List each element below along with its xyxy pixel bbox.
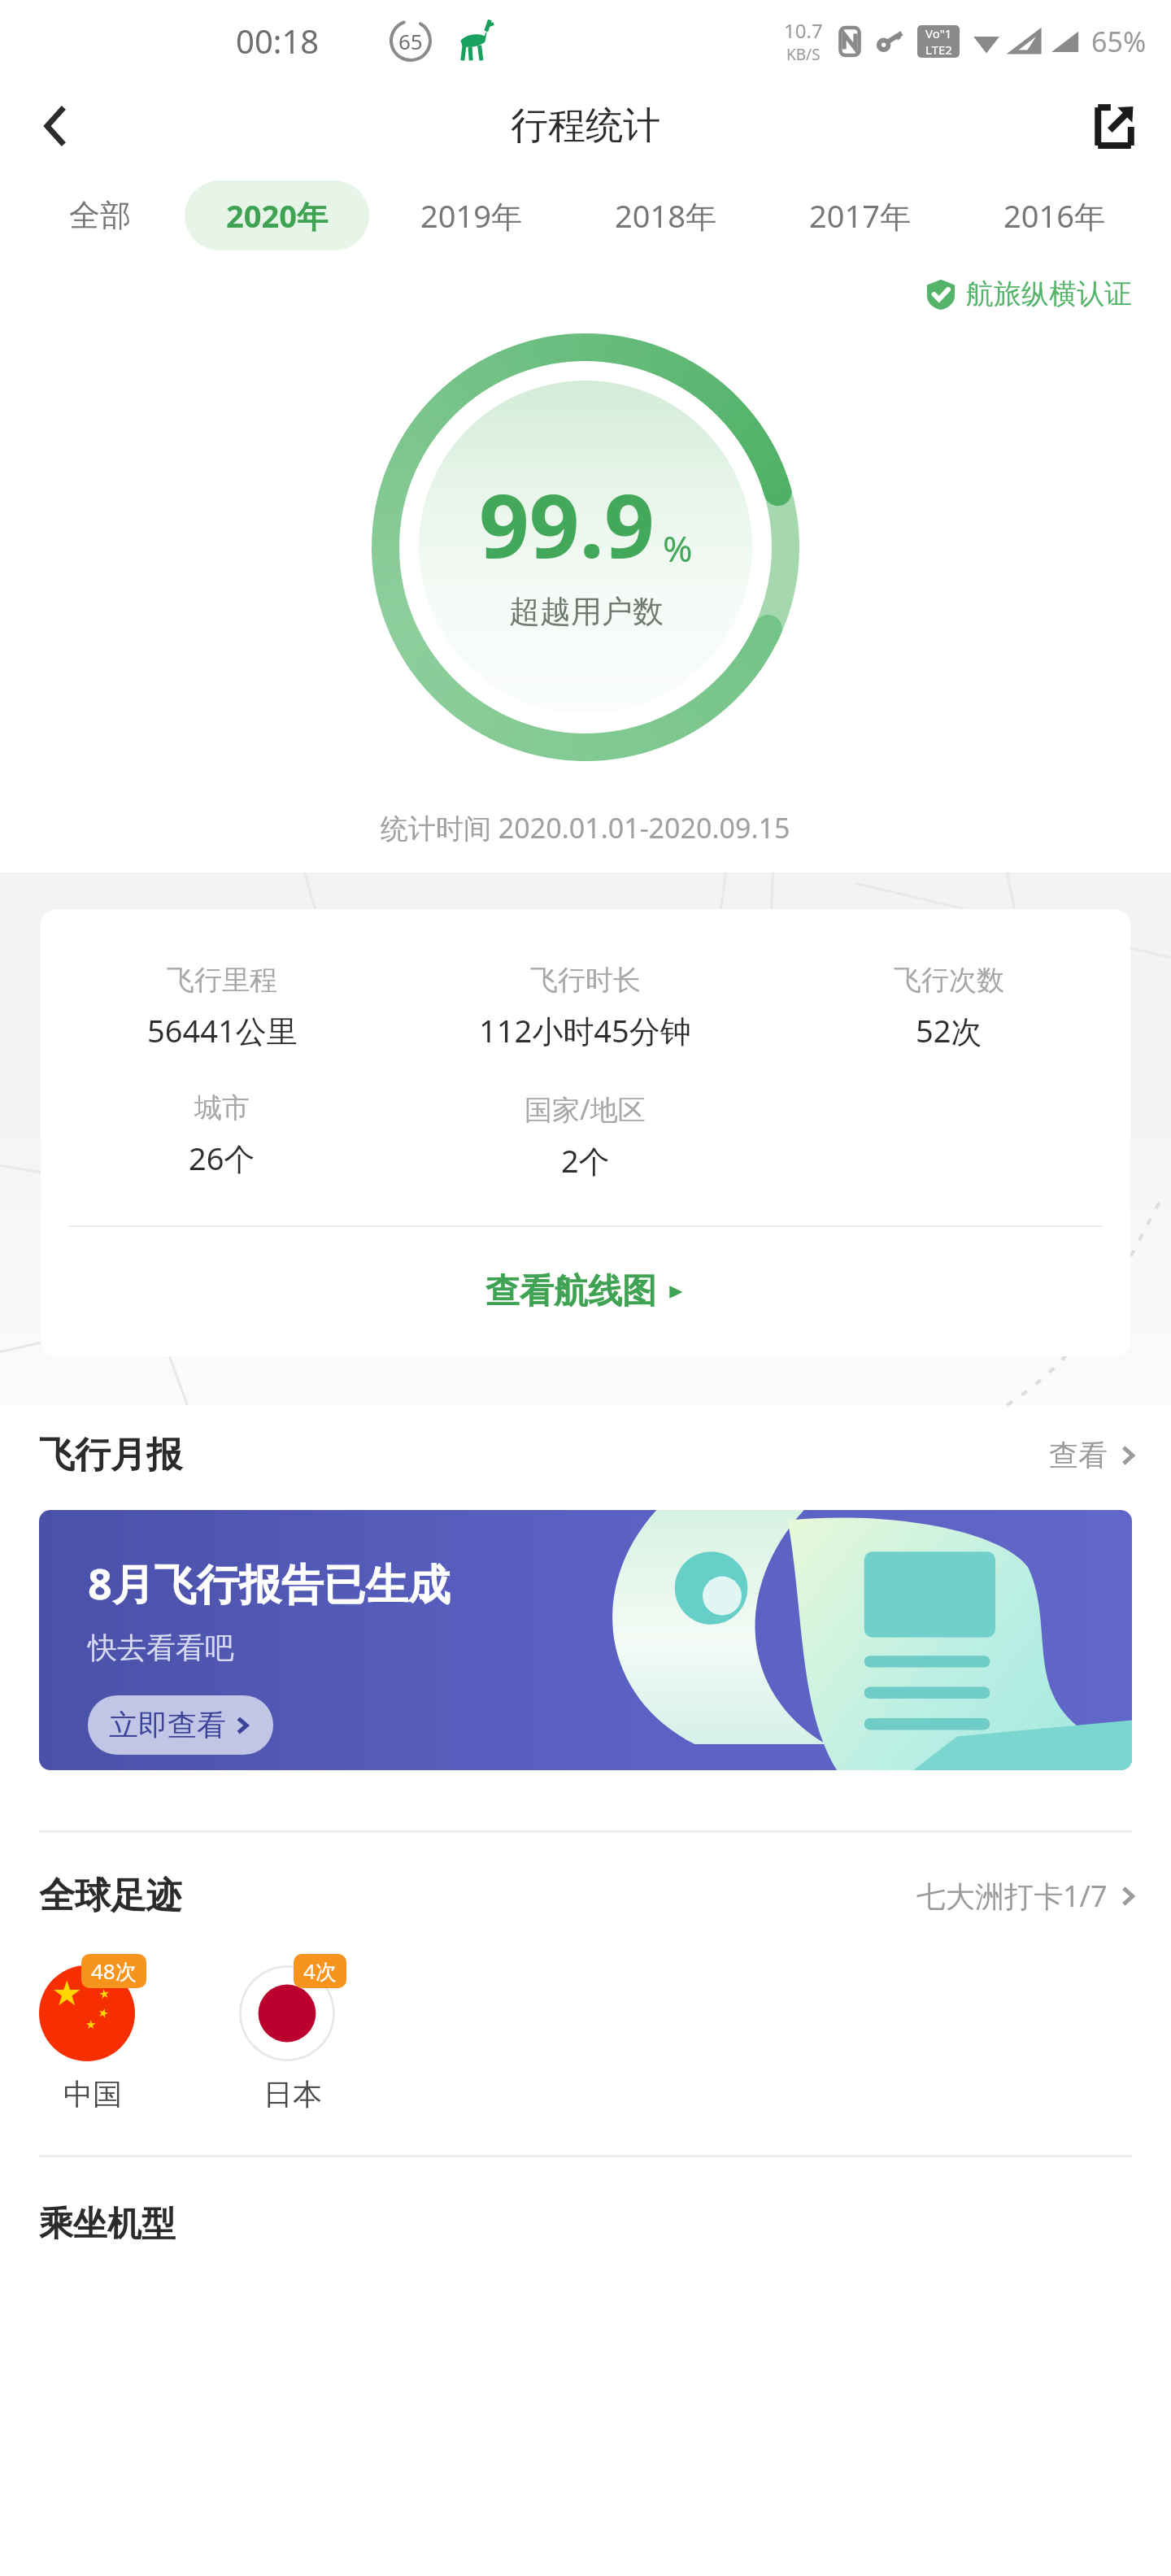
staticText: 56441公里	[147, 1009, 298, 1051]
button[interactable]: 查看航线图	[41, 1227, 1130, 1356]
staticText: 26个	[189, 1137, 255, 1179]
button[interactable]: 立即查看	[88, 1695, 273, 1755]
staticText: 查看	[1049, 1437, 1108, 1473]
staticText: 2020年	[226, 194, 328, 237]
button[interactable]: 8月飞行报告已生成	[39, 1510, 1132, 1770]
staticText: 2个	[561, 1139, 610, 1181]
button[interactable]: 全部	[24, 181, 175, 250]
staticText: 2019年	[420, 194, 522, 237]
staticText: 99.9	[479, 464, 655, 584]
staticText: 飞行时长	[530, 963, 641, 998]
button[interactable]: 航旅纵横认证	[925, 276, 1132, 311]
button[interactable]: 查看	[1049, 1437, 1138, 1473]
staticText: 乘坐机型	[39, 2203, 176, 2246]
staticText: 日本	[263, 2076, 322, 2113]
button[interactable]: 2018年	[573, 181, 758, 250]
staticText: 行程统计	[511, 102, 660, 150]
staticText: KB/S	[786, 44, 821, 65]
staticText: 超越用户数	[509, 592, 664, 631]
staticText: 中国	[63, 2076, 122, 2113]
button[interactable]: 2020年	[185, 181, 369, 250]
staticText: 航旅纵横认证	[966, 276, 1132, 311]
button[interactable]: 4次	[239, 1954, 346, 2113]
staticText: 立即查看	[109, 1707, 226, 1743]
staticText: 七大洲打卡1/7	[916, 1876, 1108, 1916]
staticText: 2018年	[615, 194, 716, 237]
staticText: 8月飞行报告已生成	[88, 1554, 451, 1612]
staticText: 统计时间 2020.01.01-2020.09.15	[381, 809, 790, 846]
staticText: 52次	[916, 1009, 982, 1051]
staticText: 全球足迹	[39, 1873, 182, 1918]
staticText: 快去看看吧	[88, 1630, 234, 1666]
button[interactable]: Share	[1075, 87, 1153, 165]
staticText: 全部	[69, 196, 131, 235]
staticText: 48次	[91, 1956, 137, 1986]
button[interactable]: 2019年	[379, 181, 564, 250]
button[interactable]: 2016年	[962, 181, 1147, 250]
staticText: LTE2	[925, 41, 952, 58]
staticText: 2016年	[1003, 194, 1105, 237]
staticText: 国家/地区	[525, 1090, 646, 1128]
button[interactable]: 七大洲打卡1/7	[916, 1876, 1138, 1916]
staticText: 查看航线图	[485, 1270, 656, 1313]
staticText: 飞行里程	[167, 963, 277, 998]
staticText: 城市	[194, 1090, 250, 1125]
staticText: 飞行次数	[894, 963, 1004, 998]
staticText: %	[663, 524, 693, 572]
staticText: 飞行月报	[39, 1433, 182, 1477]
staticText: 4次	[303, 1956, 337, 1986]
button[interactable]: 48次	[39, 1954, 146, 2113]
staticText: 112小时45分钟	[479, 1009, 691, 1051]
staticText: 10.7	[784, 17, 823, 44]
staticText: 65%	[1091, 23, 1147, 60]
staticText: Vo"1	[925, 25, 952, 41]
button[interactable]: Back	[16, 87, 94, 165]
button[interactable]: 2017年	[768, 181, 952, 250]
staticText: 2017年	[809, 194, 911, 237]
staticText: 65	[398, 27, 423, 55]
staticText: 00:18	[236, 19, 320, 63]
